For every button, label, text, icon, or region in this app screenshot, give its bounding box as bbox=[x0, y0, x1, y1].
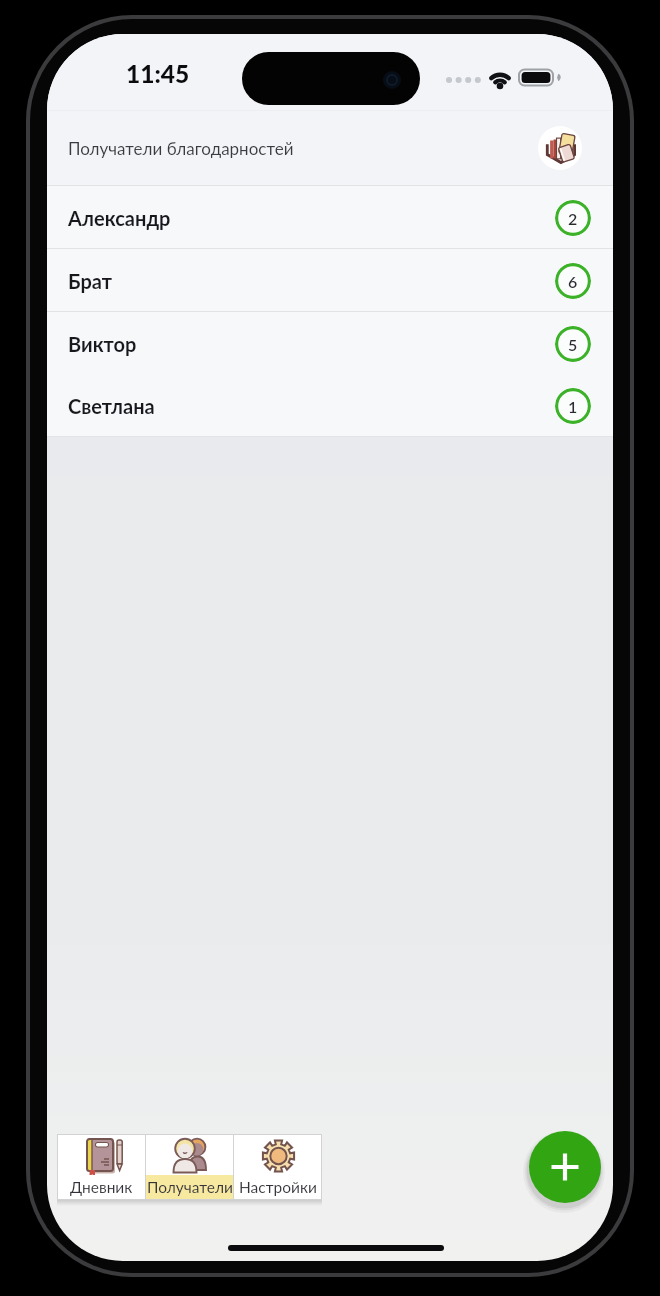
button[interactable] bbox=[529, 1131, 601, 1203]
staticText: Получатели благодарностей bbox=[68, 138, 294, 158]
staticText: 1 bbox=[568, 397, 578, 416]
button[interactable]: Светлана bbox=[47, 374, 613, 437]
button[interactable]: Виктор bbox=[47, 312, 613, 375]
button[interactable]: Получатели bbox=[146, 1135, 233, 1199]
staticText: Дневник bbox=[70, 1178, 133, 1197]
staticText: Виктор bbox=[68, 332, 137, 356]
button[interactable]: Брат bbox=[47, 249, 613, 312]
staticText: Получатели bbox=[147, 1178, 233, 1197]
staticText: Александр bbox=[68, 206, 171, 230]
staticText: 2 bbox=[568, 209, 578, 228]
staticText: 5 bbox=[568, 335, 578, 354]
staticText: Настройки bbox=[239, 1178, 317, 1197]
staticText: 6 bbox=[568, 272, 578, 291]
staticText: 11:45 bbox=[126, 59, 190, 88]
button[interactable]: Дневник bbox=[58, 1135, 145, 1199]
button[interactable]: Настройки bbox=[234, 1135, 321, 1199]
staticText: Брат bbox=[68, 269, 113, 293]
button[interactable]: Александр bbox=[47, 186, 613, 249]
button[interactable] bbox=[538, 126, 582, 170]
staticText: Светлана bbox=[68, 394, 155, 418]
